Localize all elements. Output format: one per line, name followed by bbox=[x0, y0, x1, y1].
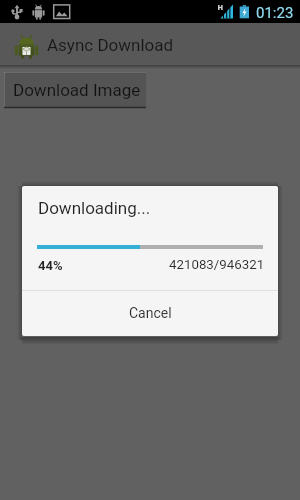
staticText: Download Image bbox=[13, 80, 141, 100]
staticText: 44% bbox=[38, 258, 63, 273]
staticText: 01:23 bbox=[256, 4, 294, 22]
staticText: Async Download bbox=[47, 35, 174, 55]
button[interactable]: Download Image bbox=[4, 72, 146, 108]
staticText: Downloading... bbox=[38, 198, 151, 218]
staticText: 421083/946321 bbox=[169, 257, 265, 273]
staticText: Cancel bbox=[129, 305, 172, 321]
button[interactable]: Cancel bbox=[22, 291, 278, 336]
